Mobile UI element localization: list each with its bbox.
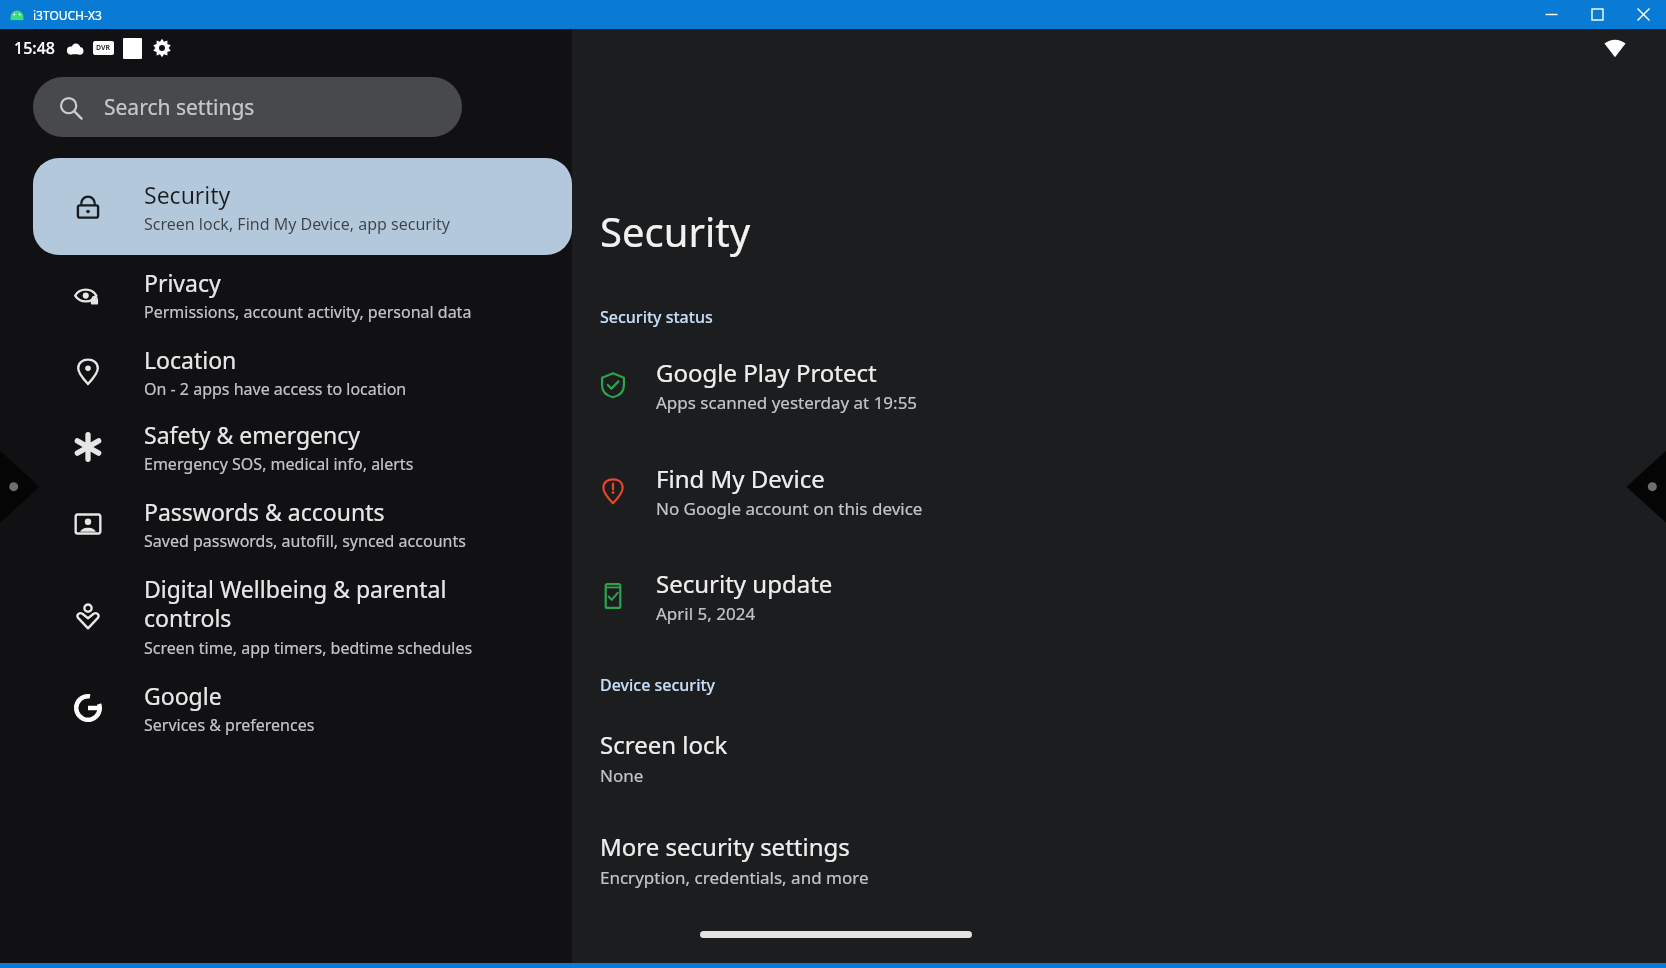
- button[interactable]: Google: [0, 669, 572, 747]
- button[interactable]: Security: [33, 158, 572, 255]
- button[interactable]: Search settings: [33, 77, 462, 137]
- staticText: Saved passwords, autofill, synced accoun…: [144, 530, 466, 552]
- staticText: Apps scanned yesterday at 19:55: [656, 391, 918, 414]
- button[interactable]: Screen lock: [572, 726, 1666, 789]
- staticText: On - 2 apps have access to location: [144, 378, 407, 400]
- button[interactable]: Passwords & accounts: [0, 485, 572, 563]
- staticText: Device security: [600, 674, 716, 696]
- staticText: i3TOUCH-X3: [33, 7, 102, 23]
- button[interactable]: Location: [0, 334, 572, 409]
- staticText: More security settings: [600, 830, 850, 863]
- staticText: Security: [144, 179, 231, 210]
- staticText: Search settings: [104, 93, 255, 122]
- button[interactable]: Maximize: [1574, 0, 1620, 29]
- button[interactable]: Safety & emergency: [0, 409, 572, 485]
- staticText: None: [600, 764, 644, 787]
- button[interactable]: Privacy: [0, 255, 572, 334]
- staticText: Digital Wellbeing & parental controls: [144, 573, 482, 634]
- button[interactable]: Minimize: [1528, 0, 1574, 29]
- staticText: Emergency SOS, medical info, alerts: [144, 453, 414, 475]
- staticText: Screen time, app timers, bedtime schedul…: [144, 637, 473, 659]
- staticText: DVR: [96, 43, 111, 53]
- staticText: Screen lock: [600, 728, 728, 761]
- staticText: 15:48: [14, 37, 55, 59]
- staticText: April 5, 2024: [656, 602, 756, 625]
- staticText: Passwords & accounts: [144, 496, 385, 527]
- staticText: Security status: [600, 306, 713, 328]
- staticText: Encryption, credentials, and more: [600, 866, 869, 889]
- staticText: Google Play Protect: [656, 356, 877, 389]
- staticText: Security: [600, 204, 751, 258]
- staticText: Safety & emergency: [144, 419, 361, 450]
- staticText: Permissions, account activity, personal …: [144, 301, 472, 323]
- staticText: Security update: [656, 567, 833, 600]
- button[interactable]: Security update: [572, 563, 1666, 629]
- staticText: Privacy: [144, 267, 221, 298]
- button[interactable]: More security settings: [572, 828, 1666, 891]
- button[interactable]: Close: [1620, 0, 1666, 29]
- staticText: No Google account on this device: [656, 497, 923, 520]
- button[interactable]: Find My Device: [572, 458, 1666, 524]
- staticText: Screen lock, Find My Device, app securit…: [144, 213, 451, 235]
- button[interactable]: Digital Wellbeing & parental controls: [0, 563, 572, 669]
- staticText: Find My Device: [656, 462, 825, 495]
- button[interactable]: Google Play Protect: [572, 352, 1666, 418]
- staticText: Services & preferences: [144, 714, 315, 736]
- staticText: Google: [144, 680, 222, 711]
- staticText: Location: [144, 344, 237, 375]
